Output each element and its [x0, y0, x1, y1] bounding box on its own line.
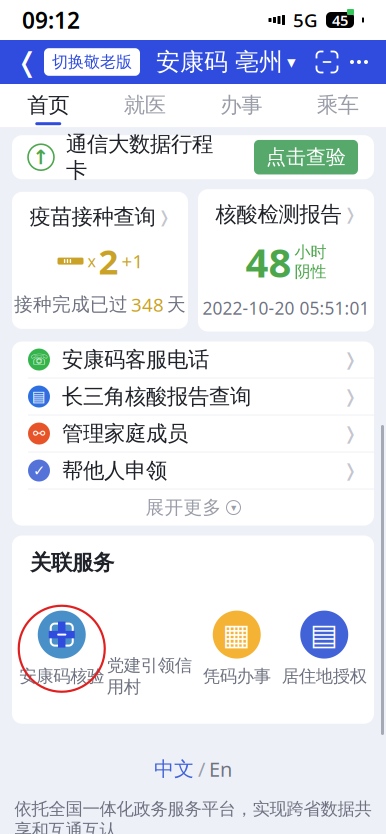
staticText: 党建引领信用村 — [107, 655, 192, 698]
staticText: ▤ — [32, 388, 46, 405]
button[interactable]: 中文 — [154, 757, 194, 781]
staticText: 安康码核验 — [19, 666, 104, 687]
button[interactable]: 展开更多 — [12, 489, 374, 525]
staticText: ❬ — [16, 47, 38, 77]
button[interactable]: ☏ — [12, 341, 374, 377]
staticText: ❭ — [343, 461, 358, 480]
staticText: ▾ — [231, 501, 236, 514]
staticText: 小时 — [294, 242, 326, 262]
staticText: ▦ — [223, 618, 251, 651]
button[interactable]: Back — [10, 40, 44, 84]
staticText: 中文 — [154, 757, 194, 781]
button[interactable]: Scan — [312, 40, 342, 84]
button[interactable]: ↑ — [12, 135, 374, 179]
staticText: 长三角核酸报告查询 — [62, 383, 251, 410]
staticText: 2 — [98, 238, 118, 284]
button[interactable]: 安康码 亳州 — [156, 47, 296, 77]
button[interactable]: ▤ — [12, 378, 374, 414]
staticText: 45 — [332, 10, 348, 30]
staticText: 09:12 — [22, 5, 80, 35]
button[interactable]: 办事 — [193, 84, 289, 127]
staticText: 就医 — [124, 92, 166, 118]
staticText: ⚯ — [33, 425, 45, 442]
button[interactable]: 乘车 — [289, 84, 386, 127]
button[interactable]: En — [209, 756, 232, 782]
staticText: ❭ — [343, 387, 358, 406]
staticText: 5G — [293, 8, 318, 32]
staticText: 依托全国一体化政务服务平台，实现跨省数据共享和互通互认 — [14, 798, 371, 834]
staticText: 天 — [167, 293, 186, 316]
staticText: 帮他人申领 — [62, 457, 167, 484]
button[interactable]: 安康码核验 — [18, 611, 105, 687]
button[interactable]: More — [342, 40, 376, 84]
staticText: 切换敬老版 — [52, 52, 132, 72]
button[interactable]: 就医 — [96, 84, 193, 127]
staticText: x — [87, 250, 95, 272]
staticText: ▾ — [287, 52, 296, 72]
staticText: 安康码 亳州 — [156, 47, 283, 77]
staticText: 凭码办事 — [203, 666, 271, 687]
staticText: 展开更多 — [145, 496, 221, 519]
staticText: 首页 — [27, 92, 69, 118]
staticText: 2022-10-20 05:51:01 — [202, 296, 369, 319]
staticText: 关联服务 — [30, 549, 114, 576]
button[interactable]: ✦ — [105, 600, 193, 698]
button[interactable]: ▤ — [280, 611, 368, 687]
staticText: 管理家庭成员 — [62, 420, 188, 447]
staticText: ☏ — [30, 351, 48, 368]
button[interactable]: 疫苗接种查询 — [12, 192, 188, 329]
staticText: 348 — [131, 292, 164, 317]
staticText: / — [198, 756, 205, 782]
staticText: ↑ — [32, 146, 49, 169]
button[interactable]: 首页 — [0, 84, 96, 127]
staticText: 安康码客服电话 — [62, 346, 209, 373]
staticText: 48 — [245, 235, 291, 288]
staticText: 点击查验 — [266, 145, 346, 169]
staticText: 居住地授权 — [282, 666, 367, 687]
button[interactable]: 切换敬老版 — [44, 48, 140, 76]
button[interactable]: ⚯ — [12, 415, 374, 451]
staticText: 疫苗接种查询 — [29, 204, 155, 230]
button[interactable]: ▦ — [193, 611, 280, 687]
staticText: 通信大数据行程卡 — [66, 131, 213, 183]
button[interactable]: ✓ — [12, 452, 374, 488]
staticText: 核酸检测报告 — [215, 201, 341, 227]
staticText: ❭ — [157, 208, 170, 226]
staticText: ❭ — [343, 350, 358, 369]
staticText: ▤ — [310, 618, 338, 651]
staticText: 阴性 — [294, 262, 326, 282]
staticText: ❭ — [343, 424, 358, 443]
staticText: +1 — [121, 249, 143, 273]
button[interactable]: 核酸检测报告 — [198, 189, 374, 331]
staticText: 乘车 — [317, 92, 359, 118]
staticText: 办事 — [220, 92, 262, 118]
staticText: En — [209, 756, 232, 782]
staticText: ❭ — [343, 205, 356, 223]
staticText: ✓ — [33, 462, 45, 479]
staticText: 接种完成已过 — [14, 293, 128, 316]
